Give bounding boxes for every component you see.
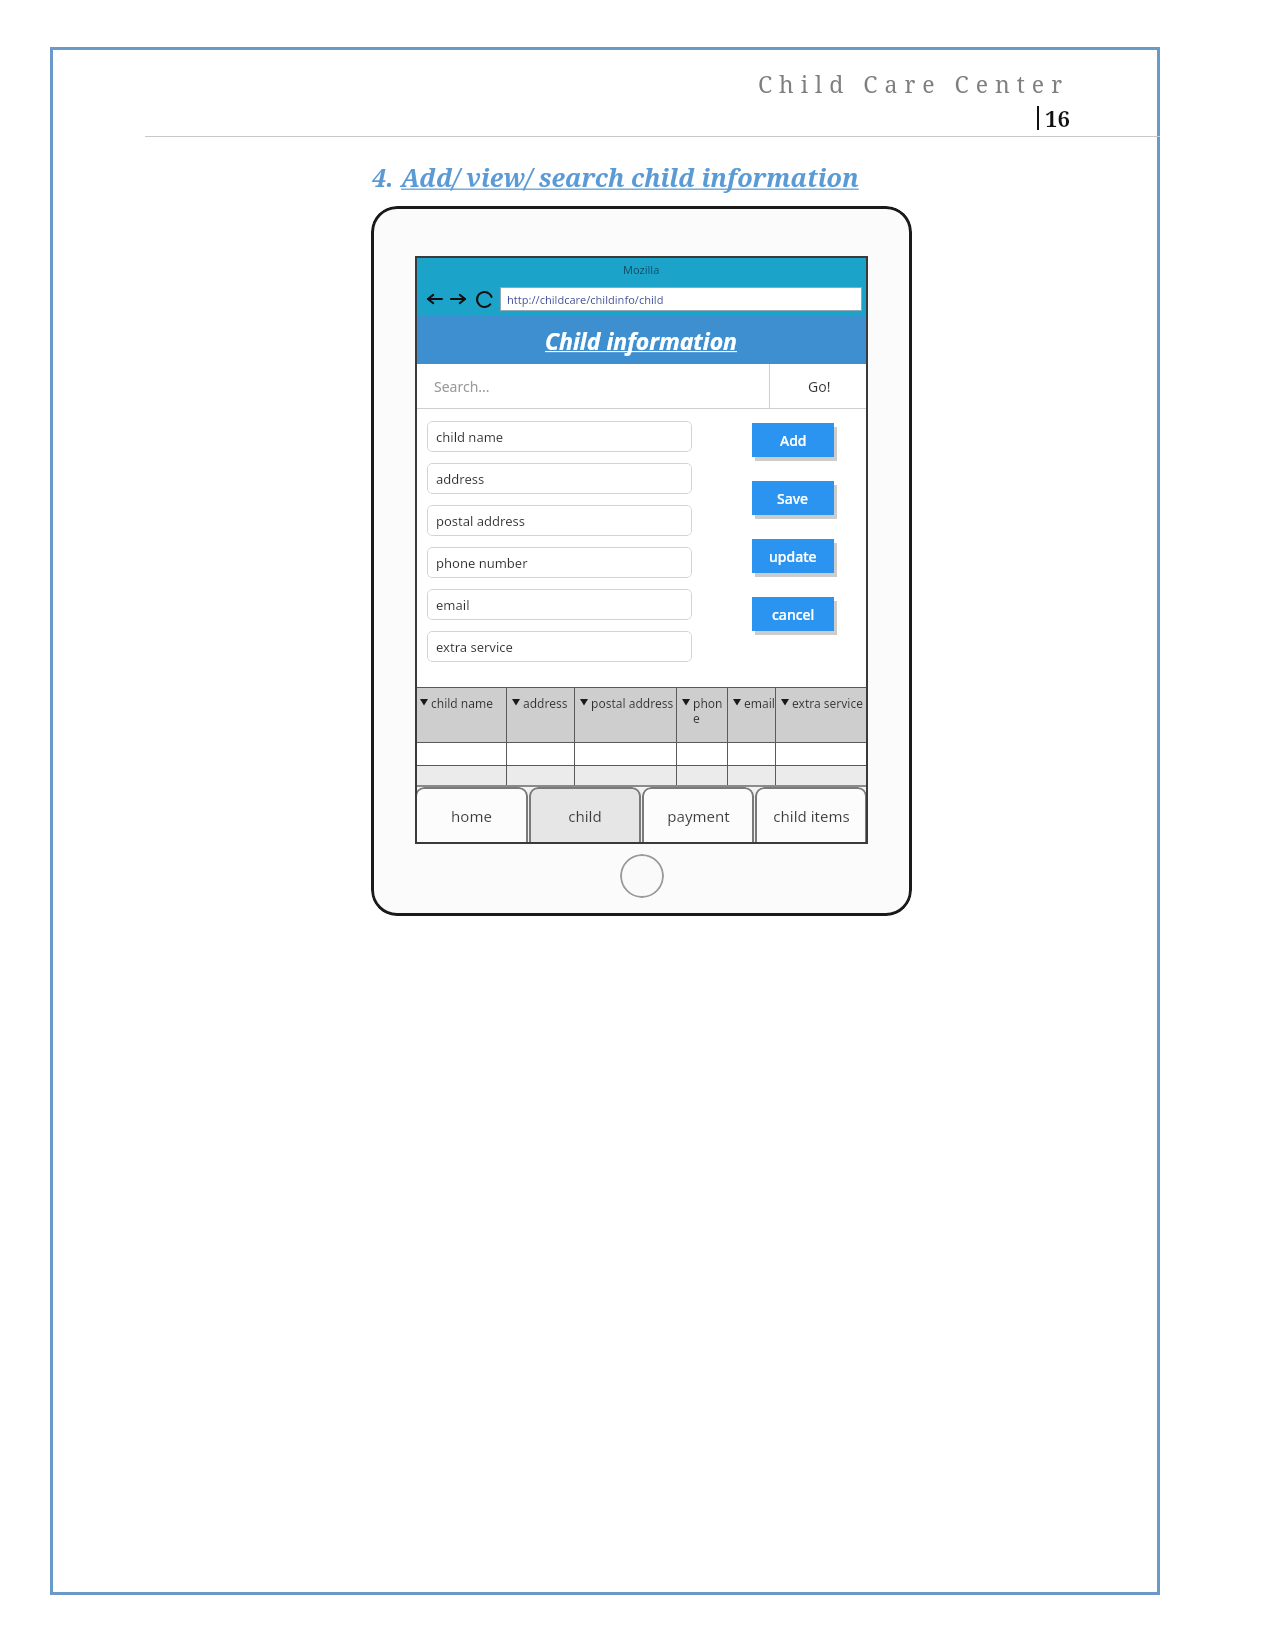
button[interactable]: payment bbox=[642, 787, 754, 844]
button[interactable]: extra service bbox=[427, 631, 692, 662]
button[interactable]: home bbox=[415, 787, 528, 844]
staticText: 16 bbox=[1045, 103, 1070, 133]
staticText: Search... bbox=[434, 377, 490, 396]
staticText: Save bbox=[777, 489, 809, 508]
button[interactable]: child items bbox=[755, 787, 867, 844]
staticText: Mozilla bbox=[623, 262, 660, 277]
button[interactable]: postal address bbox=[575, 688, 676, 742]
button[interactable]: Add bbox=[752, 423, 834, 457]
button[interactable]: Go! bbox=[770, 364, 868, 408]
staticText: postal address bbox=[591, 695, 674, 711]
staticText: address bbox=[523, 695, 568, 711]
staticText: Add/ view/ search child information bbox=[401, 160, 859, 194]
button[interactable]: postal address bbox=[427, 505, 692, 536]
staticText: Child information bbox=[545, 325, 738, 356]
button[interactable]: child name bbox=[427, 421, 692, 452]
staticText: address bbox=[436, 470, 485, 488]
staticText: home bbox=[451, 806, 492, 826]
button[interactable]: Home bbox=[620, 854, 664, 898]
staticText: http://childcare/childinfo/child bbox=[507, 292, 664, 307]
staticText: phone number bbox=[436, 554, 528, 572]
staticText: child bbox=[568, 806, 602, 826]
button[interactable]: child name bbox=[415, 688, 506, 742]
button[interactable]: http://childcare/childinfo/child bbox=[500, 287, 862, 311]
staticText: payment bbox=[667, 806, 730, 826]
staticText: extra service bbox=[436, 638, 513, 656]
button[interactable]: update bbox=[752, 539, 834, 573]
button[interactable]: extra service bbox=[776, 688, 868, 742]
button[interactable]: email bbox=[728, 688, 775, 742]
button[interactable]: child bbox=[529, 787, 641, 844]
staticText: email bbox=[744, 695, 775, 711]
staticText: Go! bbox=[808, 377, 831, 396]
staticText: 4. bbox=[372, 160, 401, 194]
staticText: child name bbox=[436, 428, 504, 446]
button[interactable]: Save bbox=[752, 481, 834, 515]
button[interactable]: Search... bbox=[415, 364, 769, 408]
button[interactable]: phone bbox=[677, 688, 727, 742]
staticText: phone bbox=[693, 695, 727, 726]
button[interactable]: Reload bbox=[474, 289, 494, 309]
staticText: child items bbox=[773, 806, 850, 826]
button[interactable]: address bbox=[427, 463, 692, 494]
button[interactable]: email bbox=[427, 589, 692, 620]
button[interactable]: address bbox=[507, 688, 574, 742]
staticText: email bbox=[436, 596, 470, 614]
button[interactable]: cancel bbox=[752, 597, 834, 631]
staticText: child name bbox=[431, 695, 494, 711]
button[interactable]: phone number bbox=[427, 547, 692, 578]
staticText: cancel bbox=[772, 605, 815, 624]
button[interactable]: Back bbox=[424, 289, 444, 309]
staticText: postal address bbox=[436, 512, 525, 530]
button[interactable]: Forward bbox=[449, 289, 469, 309]
staticText: Child Care Center bbox=[758, 68, 1070, 99]
staticText: Add bbox=[780, 431, 807, 450]
staticText: update bbox=[769, 547, 817, 566]
staticText: extra service bbox=[792, 695, 863, 711]
